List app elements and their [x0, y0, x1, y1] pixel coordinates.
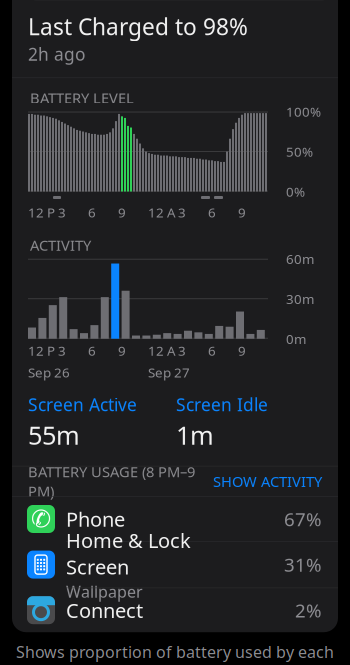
- staticText: 55m: [28, 418, 80, 452]
- staticText: ✆: [31, 505, 51, 533]
- staticText: 12 A: [148, 342, 176, 359]
- staticText: 12 P: [28, 203, 55, 221]
- staticText: Phone: [66, 506, 125, 532]
- staticText: 12 P: [28, 342, 55, 359]
- staticText: BATTERY LEVEL: [30, 88, 134, 107]
- staticText: 6: [88, 342, 96, 359]
- button[interactable]: Connect: [12, 588, 338, 632]
- staticText: BATTERY USAGE (8 PM–9 PM): [28, 462, 195, 501]
- staticText: 3: [58, 342, 66, 359]
- staticText: Last Charged to 98%: [28, 11, 248, 41]
- staticText: 3: [178, 203, 186, 221]
- staticText: 3: [178, 342, 186, 359]
- staticText: ACTIVITY: [30, 235, 91, 255]
- staticText: Wallpaper: [66, 581, 143, 602]
- staticText: 9: [118, 203, 126, 221]
- button[interactable]: Home & Lock Screen: [12, 542, 338, 588]
- staticText: 3: [58, 203, 66, 221]
- staticText: 9: [238, 203, 246, 221]
- staticText: 30m: [286, 290, 314, 308]
- staticText: 0%: [286, 183, 305, 200]
- staticText: 100%: [286, 103, 321, 120]
- staticText: 31%: [284, 552, 322, 577]
- staticText: Screen Idle: [176, 393, 268, 416]
- staticText: Sep 27: [148, 363, 190, 381]
- staticText: Home & Lock Screen: [66, 527, 191, 580]
- staticText: 9: [118, 342, 126, 359]
- staticText: 2h ago: [28, 42, 85, 65]
- staticText: Screen Active: [28, 393, 137, 416]
- staticText: 2%: [295, 598, 322, 623]
- staticText: 12 A: [148, 203, 176, 221]
- staticText: SHOW ACTIVITY: [213, 472, 322, 491]
- staticText: 9: [238, 342, 246, 359]
- button[interactable]: SHOW ACTIVITY: [213, 472, 322, 491]
- button[interactable]: ✆: [12, 497, 338, 542]
- staticText: 6: [88, 203, 96, 221]
- staticText: Connect: [66, 597, 143, 623]
- staticText: 0m: [286, 330, 306, 348]
- staticText: 60m: [286, 250, 314, 268]
- staticText: 67%: [284, 507, 322, 531]
- staticText: 6: [208, 203, 216, 221]
- staticText: Sep 26: [28, 363, 70, 381]
- staticText: Shows proportion of battery used by each…: [16, 641, 334, 665]
- staticText: 50%: [286, 143, 313, 160]
- staticText: 6: [208, 342, 216, 359]
- staticText: 1m: [176, 418, 214, 452]
